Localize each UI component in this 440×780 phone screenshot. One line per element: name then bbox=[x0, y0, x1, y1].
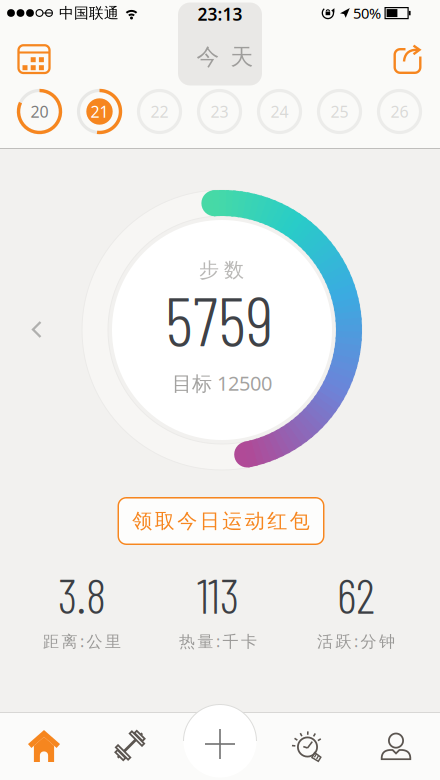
button[interactable]: Add bbox=[185, 714, 255, 774]
staticText: 21 bbox=[90, 101, 108, 122]
staticText: 领取今日运动红包 bbox=[132, 509, 310, 533]
button[interactable]: Day 20 bbox=[16, 88, 62, 134]
staticText: 距离:公里 bbox=[43, 630, 121, 652]
staticText: 113 bbox=[197, 566, 239, 623]
staticText: 目标 12500 bbox=[172, 370, 272, 396]
button[interactable]: Profile bbox=[361, 719, 431, 775]
staticText: 23:13 bbox=[197, 2, 242, 25]
button[interactable]: Training bbox=[96, 718, 166, 774]
staticText: 5759 bbox=[165, 277, 273, 360]
staticText: 活跃:分钟 bbox=[317, 630, 395, 652]
staticText: 22 bbox=[150, 101, 168, 122]
button[interactable]: Day 25 bbox=[316, 88, 362, 134]
button[interactable]: Calendar bbox=[12, 38, 56, 80]
button[interactable]: Previous day bbox=[21, 309, 51, 349]
staticText: 62 bbox=[337, 566, 375, 623]
staticText: 24 bbox=[270, 101, 288, 122]
button[interactable]: Discover bbox=[274, 719, 344, 775]
staticText: 26 bbox=[390, 101, 408, 122]
button[interactable]: Day 24 bbox=[256, 88, 302, 134]
staticText: 步数 bbox=[199, 258, 244, 282]
staticText: 25 bbox=[330, 101, 348, 122]
button[interactable]: 领取今日运动红包 bbox=[117, 497, 324, 545]
staticText: 3.8 bbox=[58, 566, 106, 623]
staticText: 50% bbox=[353, 3, 381, 23]
button[interactable]: Day 21 bbox=[76, 88, 122, 134]
button[interactable]: Home bbox=[9, 719, 79, 775]
staticText: 今天 bbox=[196, 43, 253, 71]
button[interactable]: Day 23 bbox=[196, 88, 242, 134]
staticText: 中国联通 bbox=[59, 4, 119, 22]
button[interactable]: Day 22 bbox=[136, 88, 182, 134]
staticText: 23 bbox=[210, 101, 228, 122]
button[interactable]: Share bbox=[385, 38, 429, 80]
button[interactable]: Day 26 bbox=[376, 88, 422, 134]
staticText: 20 bbox=[30, 101, 48, 122]
staticText: 热量:千卡 bbox=[179, 630, 257, 652]
